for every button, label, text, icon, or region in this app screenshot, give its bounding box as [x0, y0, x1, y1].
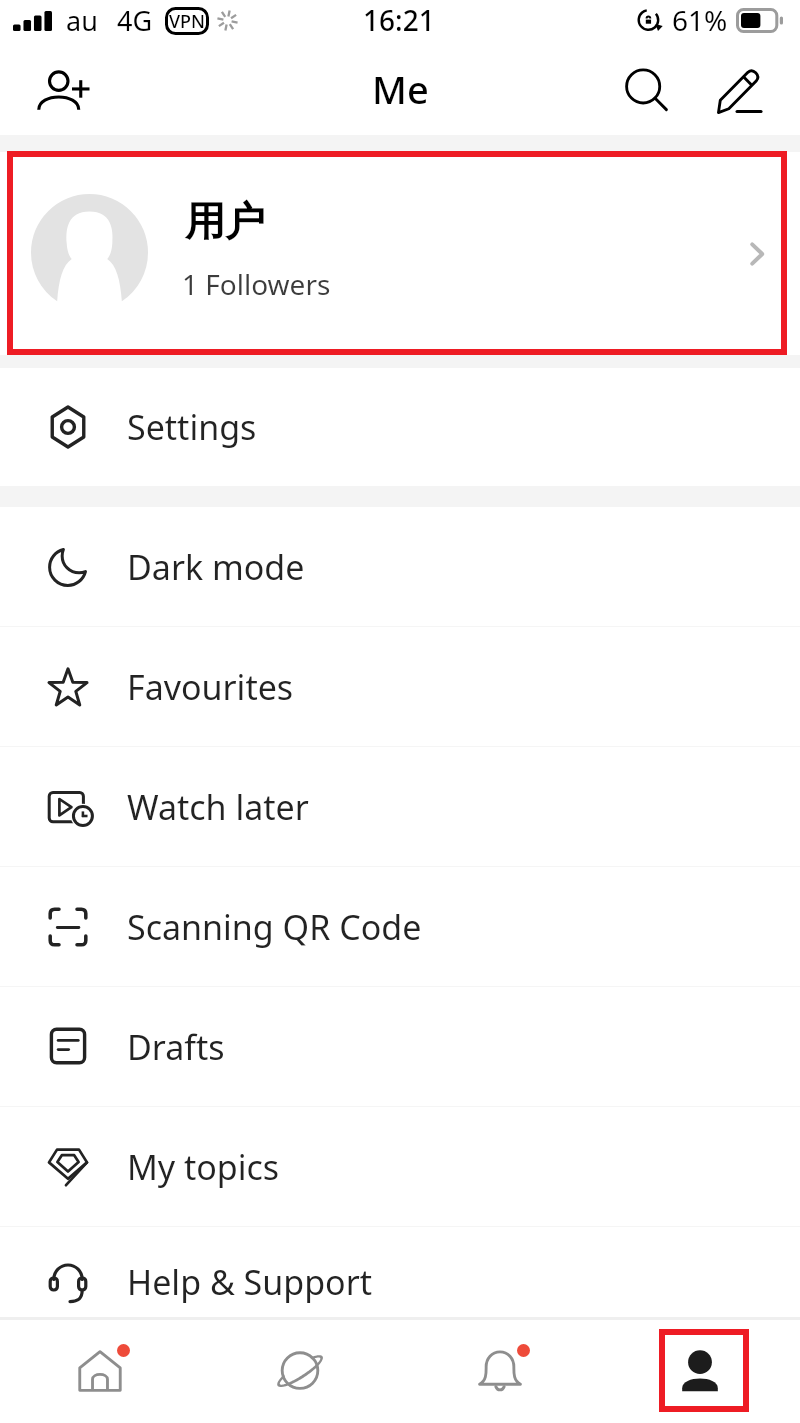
staticText: 1 Followers [182, 265, 331, 303]
staticText: 用户 [185, 196, 265, 246]
button[interactable]: Favourites [0, 627, 800, 746]
button[interactable]: Profile [600, 1320, 800, 1423]
staticText: Scanning QR Code [127, 904, 422, 950]
staticText: VPN [169, 9, 206, 34]
button[interactable]: Drafts [0, 987, 800, 1106]
staticText: 16:21 [363, 1, 435, 39]
button[interactable]: Search [615, 58, 681, 124]
staticText: au [66, 2, 98, 39]
staticText: Watch later [127, 784, 309, 830]
button[interactable]: Explore [200, 1320, 400, 1423]
button[interactable]: Watch later [0, 747, 800, 866]
button[interactable]: Scanning QR Code [0, 867, 800, 986]
staticText: Me [372, 63, 429, 115]
button[interactable]: My topics [0, 1107, 800, 1226]
staticText: Settings [127, 404, 257, 450]
staticText: Help & Support [127, 1259, 373, 1305]
button[interactable]: Add friend [30, 58, 94, 122]
staticText: Dark mode [127, 544, 305, 590]
button[interactable]: Settings [0, 368, 800, 486]
button[interactable]: Edit [705, 58, 771, 124]
button[interactable]: Home [0, 1320, 200, 1423]
button[interactable]: 用户 [0, 152, 800, 355]
staticText: Drafts [127, 1024, 225, 1070]
button[interactable]: Notifications [400, 1320, 600, 1423]
staticText: 61% [672, 1, 728, 39]
staticText: Favourites [127, 664, 294, 710]
button[interactable]: Help & Support [0, 1237, 800, 1317]
button[interactable]: Dark mode [0, 507, 800, 626]
staticText: 4G [117, 2, 153, 39]
staticText: My topics [127, 1144, 280, 1190]
